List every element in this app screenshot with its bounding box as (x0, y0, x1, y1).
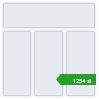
button[interactable]: Trip summary (3, 3, 95, 28)
button[interactable]: Offer 2 (34, 31, 63, 96)
button[interactable]: Offer 1 (3, 31, 31, 96)
staticText: 1254 zł (73, 77, 92, 84)
button[interactable]: Offer 3 (66, 31, 95, 96)
button[interactable]: 1254 zł (56, 74, 96, 85)
